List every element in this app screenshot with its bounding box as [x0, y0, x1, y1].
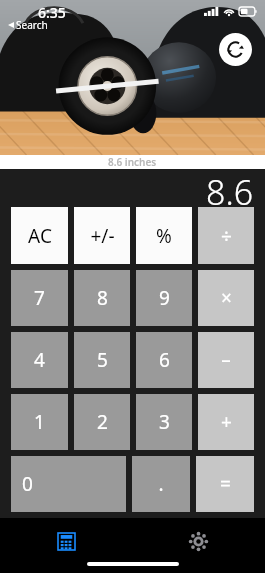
button[interactable]: Calculator: [0, 526, 132, 556]
button[interactable]: 2: [74, 394, 130, 450]
staticText: –: [221, 347, 231, 373]
button[interactable]: ×: [198, 270, 254, 326]
staticText: ÷: [221, 223, 232, 249]
button[interactable]: 1: [11, 394, 68, 450]
staticText: 2: [97, 409, 108, 435]
button[interactable]: .: [132, 456, 190, 512]
staticText: Search: [16, 18, 48, 32]
staticText: AC: [28, 223, 52, 249]
staticText: 5: [97, 347, 108, 373]
staticText: =: [220, 471, 231, 497]
button[interactable]: 9: [136, 270, 192, 326]
staticText: %: [156, 223, 172, 249]
button[interactable]: AC: [11, 207, 68, 264]
button[interactable]: 6: [136, 332, 192, 388]
staticText: 9: [159, 285, 170, 311]
button[interactable]: %: [136, 207, 192, 264]
staticText: 8.6: [206, 169, 254, 205]
staticText: .: [158, 471, 164, 497]
staticText: 6:35: [38, 3, 66, 22]
staticText: 8.6 inches: [108, 155, 157, 169]
staticText: ×: [221, 285, 232, 311]
button[interactable]: =: [196, 456, 254, 512]
button[interactable]: 4: [11, 332, 68, 388]
staticText: 7: [34, 285, 45, 311]
button[interactable]: +/-: [74, 207, 130, 264]
staticText: 1: [34, 409, 45, 435]
button[interactable]: Flip camera: [219, 33, 252, 66]
button[interactable]: 0: [11, 456, 126, 512]
staticText: 4: [34, 347, 45, 373]
button[interactable]: 7: [11, 270, 68, 326]
button[interactable]: 8: [74, 270, 130, 326]
staticText: 6: [159, 347, 170, 373]
staticText: 8: [97, 285, 108, 311]
staticText: +: [221, 409, 232, 435]
staticText: 0: [22, 471, 33, 497]
button[interactable]: 3: [136, 394, 192, 450]
staticText: 3: [159, 409, 170, 435]
button[interactable]: 5: [74, 332, 130, 388]
button[interactable]: ÷: [198, 207, 254, 264]
button[interactable]: +: [198, 394, 254, 450]
button[interactable]: –: [198, 332, 254, 388]
button[interactable]: Settings: [132, 526, 265, 556]
staticText: +/-: [90, 223, 115, 249]
